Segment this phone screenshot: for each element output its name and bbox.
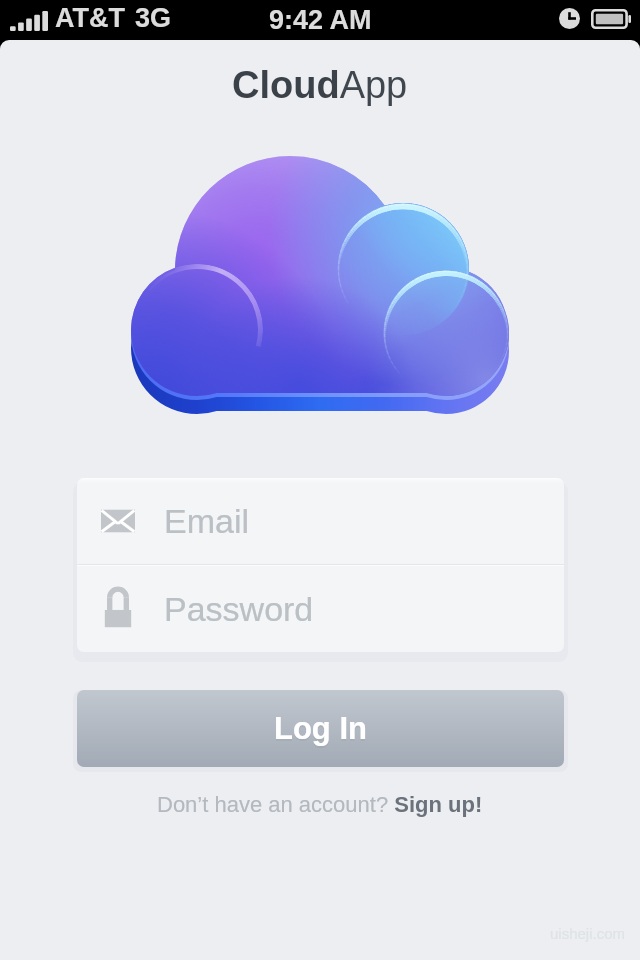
- staticText: uisheji.com: [550, 925, 626, 942]
- staticText: Password: [164, 590, 314, 628]
- staticText: 9:42 AM: [269, 5, 372, 35]
- button[interactable]: Email: [77, 478, 564, 564]
- staticText: Email: [164, 502, 250, 540]
- other: Password: [98, 590, 138, 628]
- staticText: Log In: [274, 711, 367, 746]
- button[interactable]: Don’t have an account? Sign up!: [157, 792, 483, 817]
- staticText: CloudApp: [232, 64, 408, 106]
- staticText: AT&T: [55, 3, 125, 33]
- other: Email: [98, 502, 138, 540]
- staticText: Don’t have an account? Sign up!: [157, 792, 483, 817]
- button[interactable]: Log In: [77, 690, 564, 767]
- other: Alarm: [559, 8, 580, 29]
- button[interactable]: Password: [77, 566, 564, 652]
- other: Battery: [591, 9, 632, 29]
- staticText: 3G: [135, 3, 172, 33]
- staticText: Log In: [274, 713, 367, 748]
